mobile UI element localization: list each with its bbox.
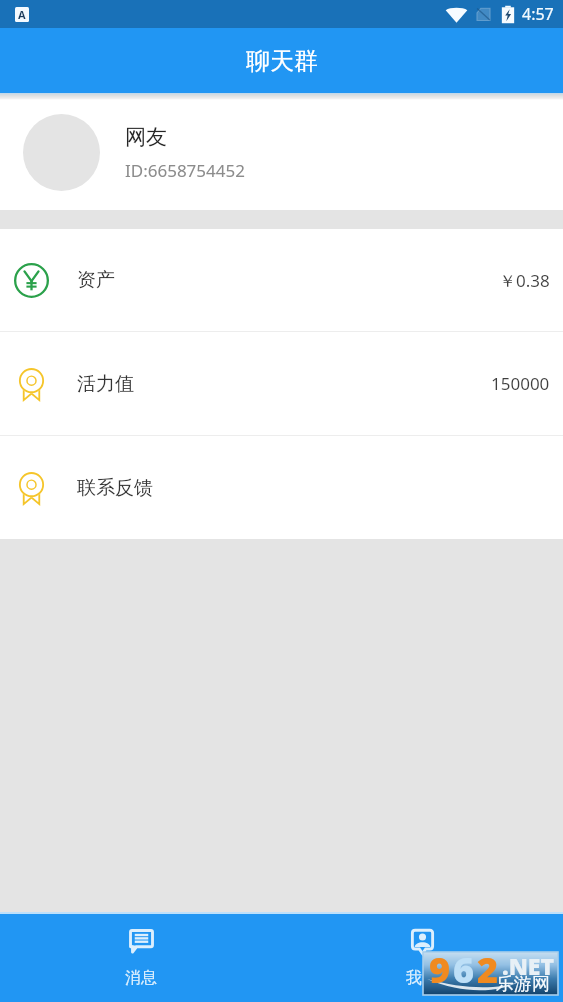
staticText: 4:57 bbox=[522, 3, 554, 25]
button[interactable]: 联系反馈 bbox=[0, 436, 563, 539]
staticText: 2 bbox=[477, 945, 501, 988]
staticText: 网友 bbox=[125, 124, 167, 150]
button[interactable]: 资产 bbox=[0, 229, 563, 331]
button[interactable]: 网友 bbox=[0, 100, 563, 210]
staticText: 联系反馈 bbox=[77, 476, 153, 500]
staticText: A bbox=[18, 7, 26, 22]
button[interactable]: 活力值 bbox=[0, 332, 563, 435]
staticText: 资产 bbox=[77, 268, 115, 292]
staticText: 6 bbox=[453, 945, 477, 988]
staticText: 我的 bbox=[406, 968, 438, 988]
staticText: 乐游网 bbox=[496, 973, 550, 996]
staticText: 聊天群 bbox=[246, 46, 318, 76]
staticText: 150000 bbox=[491, 372, 550, 395]
button[interactable]: 我的 bbox=[281, 914, 563, 1002]
staticText: 9 bbox=[429, 945, 453, 988]
staticText: ￥0.38 bbox=[499, 269, 550, 292]
staticText: .NET bbox=[502, 950, 555, 981]
button[interactable]: 消息 bbox=[0, 914, 281, 1002]
staticText: 消息 bbox=[125, 968, 157, 988]
staticText: ID:6658754452 bbox=[125, 159, 245, 182]
staticText: 活力值 bbox=[77, 372, 134, 396]
